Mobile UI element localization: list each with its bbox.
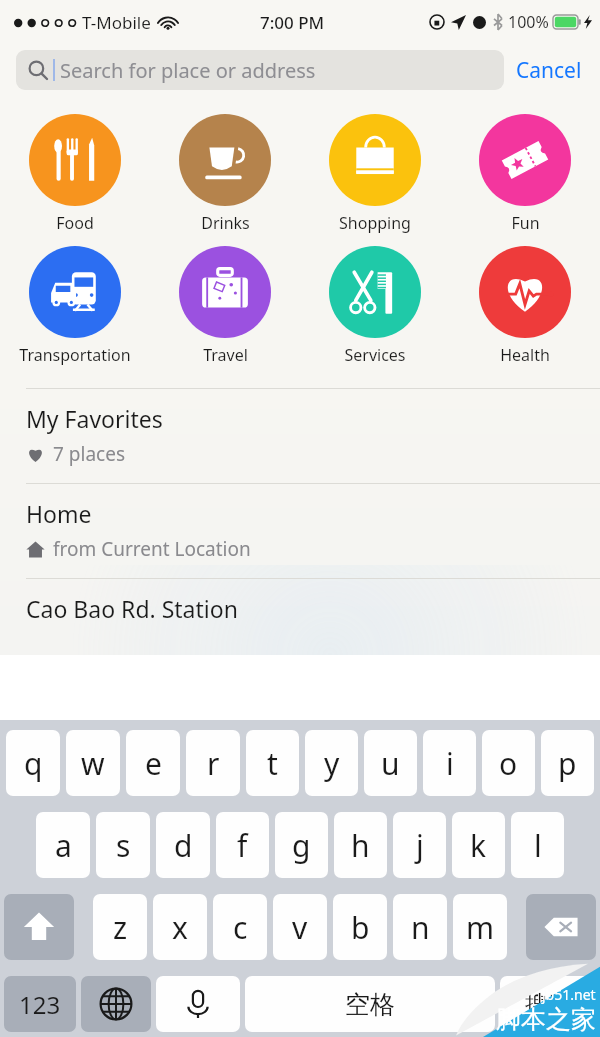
staticText: from Current Location (53, 536, 251, 562)
button[interactable]: y (305, 730, 358, 796)
button[interactable]: w (66, 730, 120, 796)
button[interactable]: Services (300, 244, 450, 368)
button[interactable]: b (333, 894, 387, 960)
button[interactable]: v (273, 894, 327, 960)
button[interactable]: l (511, 812, 564, 878)
button[interactable]: Shopping (300, 112, 450, 236)
staticText: d (174, 825, 193, 866)
staticText: Transportation (19, 344, 131, 366)
staticText: o (499, 743, 518, 784)
staticText: a (55, 825, 72, 866)
button[interactable]: Health (450, 244, 600, 368)
staticText: i (446, 743, 454, 784)
button[interactable]: My Favorites (0, 389, 600, 483)
button[interactable]: g (275, 812, 328, 878)
staticText: w (81, 743, 105, 784)
staticText: 7 places (53, 441, 125, 467)
button[interactable]: n (393, 894, 447, 960)
staticText: Food (56, 212, 94, 234)
staticText: jb51.net (542, 985, 596, 1004)
button[interactable]: Backspace (526, 894, 596, 960)
button[interactable]: a (36, 812, 90, 878)
staticText: Travel (203, 344, 248, 366)
staticText: j (416, 825, 424, 866)
staticText: l (534, 825, 542, 866)
staticText: k (470, 825, 487, 866)
button[interactable]: Fun (450, 112, 600, 236)
staticText: t (267, 743, 278, 784)
button[interactable]: e (126, 730, 180, 796)
button[interactable]: Cancel (504, 56, 584, 85)
button[interactable]: k (452, 812, 505, 878)
button[interactable]: Transportation (0, 244, 150, 368)
staticText: Drinks (201, 212, 250, 234)
button[interactable]: c (213, 894, 267, 960)
staticText: 脚本之家 (496, 1004, 596, 1035)
button[interactable]: Search for place or address (16, 50, 504, 90)
button[interactable]: o (482, 730, 535, 796)
staticText: e (145, 743, 162, 784)
button[interactable]: s (96, 812, 150, 878)
staticText: Fun (511, 212, 540, 234)
button[interactable]: Food (0, 112, 150, 236)
staticText: Health (500, 344, 550, 366)
button[interactable]: r (186, 730, 240, 796)
staticText: s (116, 825, 131, 866)
button[interactable]: f (216, 812, 269, 878)
staticText: Services (344, 344, 406, 366)
staticText: z (113, 907, 128, 948)
button[interactable]: i (423, 730, 476, 796)
button[interactable]: x (153, 894, 207, 960)
staticText: Cancel (516, 56, 582, 85)
button[interactable]: q (6, 730, 60, 796)
staticText: y (324, 743, 340, 784)
staticText: My Favorites (26, 403, 163, 434)
button[interactable]: 123 (4, 976, 76, 1032)
button[interactable]: t (246, 730, 299, 796)
staticText: f (237, 825, 248, 866)
staticText: n (411, 907, 430, 948)
staticText: m (466, 907, 495, 948)
staticText: h (351, 825, 370, 866)
staticText: T-Mobile (82, 11, 151, 34)
staticText: u (381, 743, 400, 784)
staticText: 搜索 (525, 990, 571, 1019)
staticText: q (24, 743, 43, 784)
button[interactable]: Shift (4, 894, 74, 960)
button[interactable]: Drinks (150, 112, 300, 236)
button[interactable]: Switch keyboard (81, 976, 151, 1032)
staticText: 空格 (345, 989, 395, 1020)
staticText: Home (26, 498, 92, 529)
button[interactable]: 搜索 (500, 976, 596, 1032)
button[interactable]: Home (0, 484, 600, 578)
button[interactable]: h (334, 812, 387, 878)
button[interactable]: p (541, 730, 594, 796)
button[interactable]: m (453, 894, 507, 960)
staticText: b (351, 907, 370, 948)
staticText: Search for place or address (60, 57, 316, 84)
staticText: c (233, 907, 248, 948)
staticText: 100% (508, 11, 549, 33)
staticText: p (558, 743, 577, 784)
staticText: r (207, 743, 220, 784)
staticText: x (172, 907, 188, 948)
staticText: g (292, 825, 311, 866)
button[interactable]: d (156, 812, 210, 878)
button[interactable]: Travel (150, 244, 300, 368)
button[interactable]: z (93, 894, 147, 960)
staticText: Cao Bao Rd. Station (26, 593, 238, 624)
staticText: v (292, 907, 308, 948)
button[interactable]: 空格 (245, 976, 495, 1032)
button[interactable]: j (393, 812, 446, 878)
staticText: Shopping (339, 212, 411, 234)
staticText: 7:00 PM (260, 11, 325, 34)
staticText: 123 (19, 988, 61, 1021)
button[interactable]: u (364, 730, 417, 796)
button[interactable]: Dictation (156, 976, 240, 1032)
